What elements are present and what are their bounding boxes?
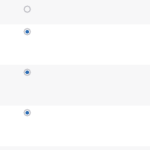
button[interactable]: Airplane mode, selected bbox=[0, 105, 150, 146]
button[interactable]: Wi‑Fi, selected bbox=[0, 24, 150, 64]
button[interactable]: Bluetooth, not selected bbox=[0, 0, 150, 24]
button[interactable]: Mobile data, selected bbox=[0, 64, 150, 105]
